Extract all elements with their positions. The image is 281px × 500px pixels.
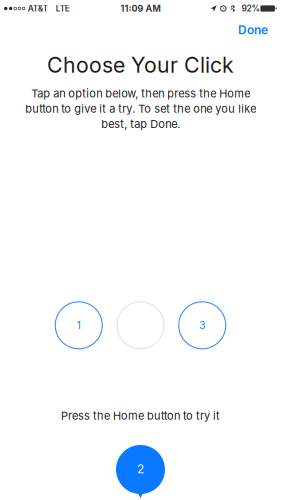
button[interactable]: Click option 3 (179, 302, 226, 349)
staticText: 1 (77, 319, 81, 331)
staticText: Choose Your Click (47, 52, 234, 78)
staticText: 2 (137, 462, 144, 476)
staticText: LTE (56, 3, 70, 13)
button[interactable]: Click option 1 (55, 302, 102, 349)
staticText: Tap an option below, then press the Home… (25, 87, 256, 131)
staticText: 3 (199, 319, 205, 331)
button[interactable]: Done (229, 16, 281, 40)
staticText: Done (238, 23, 268, 37)
button[interactable]: Click option 2 (117, 302, 164, 349)
staticText: AT&T (28, 3, 48, 13)
staticText: 92% (241, 3, 260, 14)
staticText: Press the Home button to try it (61, 409, 220, 422)
staticText: 11:09 AM (120, 3, 160, 14)
